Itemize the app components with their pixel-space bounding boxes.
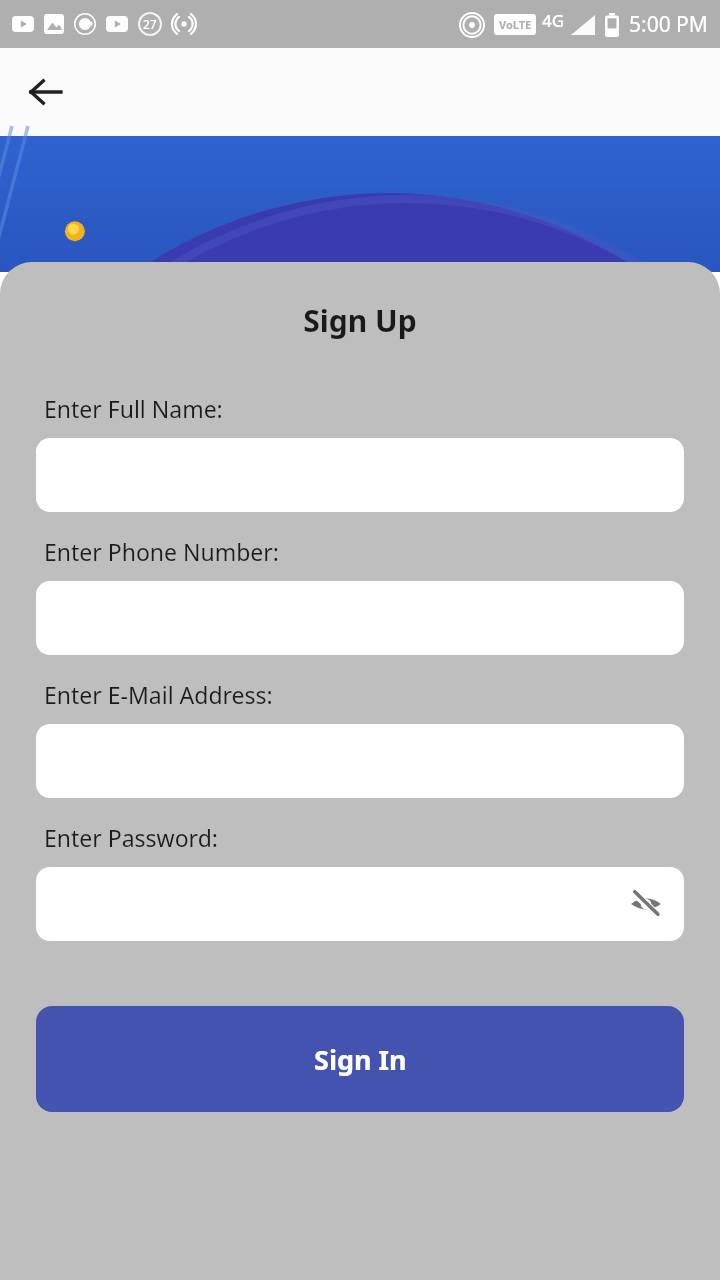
- staticText: Sign Up: [0, 300, 720, 341]
- staticText: Enter Password:: [44, 822, 218, 853]
- staticText: Enter E-Mail Address:: [44, 679, 273, 710]
- staticText: 5:00 PM: [629, 10, 708, 39]
- button[interactable]: [36, 581, 684, 655]
- staticText: Enter Phone Number:: [44, 536, 279, 567]
- staticText: VoLTE: [499, 17, 532, 32]
- button[interactable]: [36, 724, 684, 798]
- button[interactable]: Sign In: [36, 1006, 684, 1112]
- button[interactable]: Toggle password visibility: [622, 880, 670, 928]
- button[interactable]: [36, 438, 684, 512]
- staticText: 27: [143, 16, 157, 32]
- staticText: Enter Full Name:: [44, 393, 223, 424]
- button[interactable]: Back: [22, 68, 70, 116]
- staticText: 4G: [542, 9, 565, 32]
- button[interactable]: Toggle password visibility: [36, 867, 684, 941]
- staticText: Sign In: [314, 1041, 407, 1078]
